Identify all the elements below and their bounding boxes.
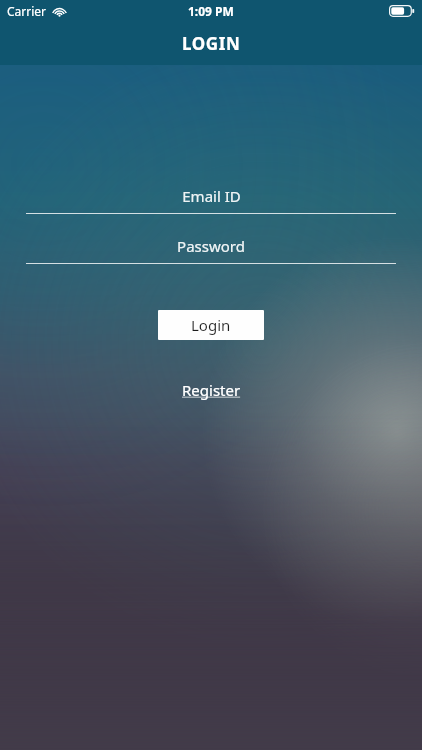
button[interactable]: Password (0, 226, 422, 264)
button[interactable]: Email ID (0, 176, 422, 214)
staticText: 1:09 PM (188, 3, 234, 19)
staticText: Login (191, 315, 231, 335)
button[interactable]: Register (166, 377, 256, 403)
staticText: Carrier (7, 3, 47, 19)
staticText: LOGIN (182, 32, 241, 55)
button[interactable]: Login (158, 310, 264, 340)
staticText: Register (182, 380, 241, 400)
staticText: Email ID (182, 186, 241, 206)
staticText: Password (177, 236, 245, 256)
